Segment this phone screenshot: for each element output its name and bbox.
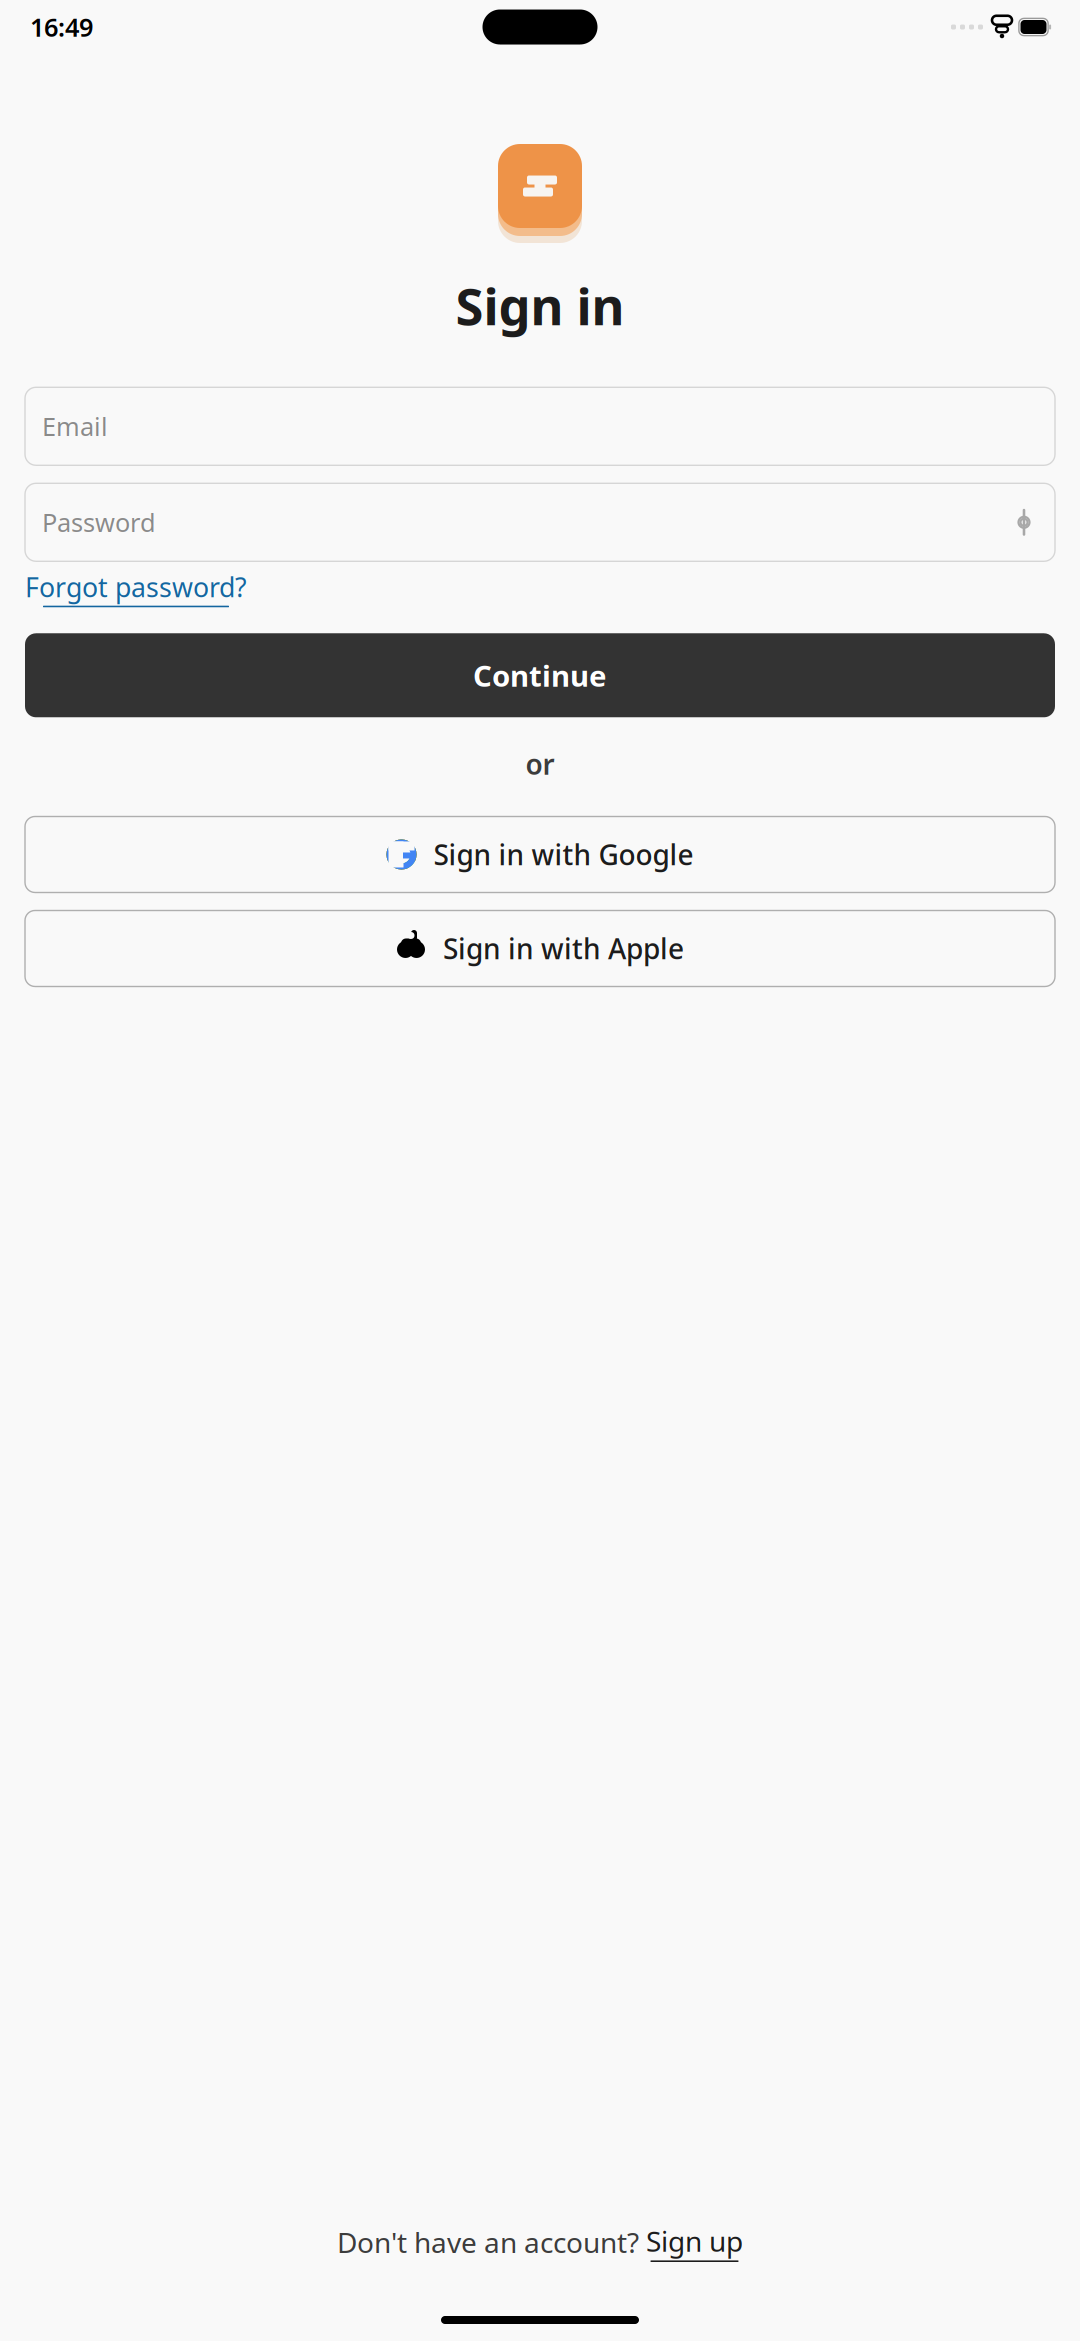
staticText: Sign in — [455, 272, 624, 339]
button[interactable]: Password — [25, 483, 1055, 561]
staticText: 16:49 — [30, 10, 93, 44]
staticText: Sign up — [646, 2222, 743, 2259]
staticText: Forgot password? — [25, 569, 247, 605]
button[interactable]: Sign in with Google — [25, 816, 1055, 892]
button[interactable]: Forgot password? — [25, 569, 247, 607]
staticText: Don't have an account? — [337, 2223, 639, 2261]
staticText: Password — [42, 505, 156, 539]
staticText: Sign in with Apple — [443, 930, 684, 967]
staticText: Sign in with Google — [433, 836, 693, 873]
staticText: or — [525, 745, 554, 782]
button[interactable]: Sign up — [646, 2222, 743, 2262]
staticText: Continue — [473, 656, 607, 695]
button[interactable]: Sign in with Apple — [25, 910, 1055, 986]
button[interactable]: Email — [25, 387, 1055, 465]
staticText: Email — [42, 409, 108, 443]
button[interactable]: Continue — [25, 633, 1055, 717]
